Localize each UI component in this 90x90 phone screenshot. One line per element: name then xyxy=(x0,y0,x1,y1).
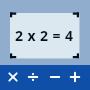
button[interactable]: Multiply xyxy=(4,67,22,87)
button[interactable]: Subtract xyxy=(46,67,64,87)
button[interactable]: Divide xyxy=(24,67,42,87)
button[interactable] xyxy=(10,13,79,58)
button[interactable]: Add xyxy=(66,67,84,87)
staticText: 2 x 2 = 4 xyxy=(15,26,74,45)
